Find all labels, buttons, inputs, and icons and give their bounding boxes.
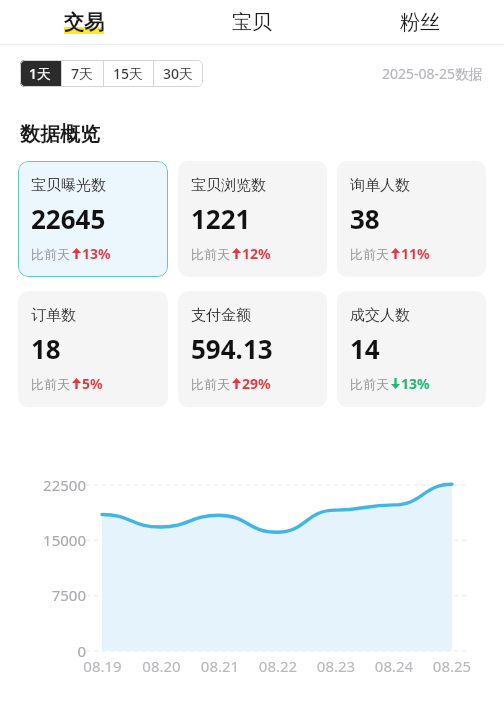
button[interactable]: 1天 [20, 60, 61, 87]
button[interactable]: 交易 [0, 0, 168, 44]
staticText: 13% [401, 374, 430, 393]
staticText: 订单数 [31, 306, 76, 325]
staticText: 询单人数 [350, 176, 410, 195]
staticText: 比前天 [350, 376, 389, 392]
button[interactable]: 订单数 [18, 291, 168, 407]
staticText: 08.25 [423, 656, 481, 673]
staticText: 08.22 [249, 656, 307, 673]
staticText: 比前天 [31, 246, 70, 262]
staticText: 宝贝曝光数 [31, 176, 106, 195]
staticText: 22500 [0, 475, 86, 495]
staticText: 12% [242, 244, 271, 263]
staticText: 0 [0, 641, 86, 661]
button[interactable]: 成交人数 [337, 291, 486, 407]
staticText: 18 [31, 331, 61, 366]
staticText: 14 [350, 331, 380, 366]
staticText: 15天 [113, 64, 144, 83]
button[interactable]: 粉丝 [336, 0, 504, 44]
staticText: 1天 [29, 64, 52, 83]
staticText: 比前天 [191, 246, 230, 262]
button[interactable]: 15天 [104, 60, 153, 87]
staticText: 数据概览 [20, 122, 100, 147]
staticText: 支付金额 [191, 306, 251, 325]
staticText: 13% [82, 244, 111, 263]
button[interactable]: 7天 [62, 60, 103, 87]
staticText: 08.19 [73, 656, 132, 673]
button[interactable]: 宝贝浏览数 [178, 161, 327, 277]
staticText: 08.23 [307, 656, 365, 673]
staticText: 宝贝浏览数 [191, 176, 266, 195]
button[interactable]: 支付金额 [178, 291, 327, 407]
button[interactable]: 30天 [154, 60, 203, 87]
staticText: 粉丝 [400, 10, 440, 35]
staticText: 比前天 [31, 376, 70, 392]
staticText: 7天 [71, 64, 94, 83]
staticText: 22645 [31, 201, 106, 236]
staticText: 成交人数 [350, 306, 410, 325]
button[interactable]: 询单人数 [337, 161, 486, 277]
staticText: 1221 [191, 201, 251, 236]
staticText: 比前天 [191, 376, 230, 392]
staticText: 5% [82, 374, 103, 393]
staticText: 2025-08-25数据 [382, 64, 484, 83]
staticText: 29% [242, 374, 271, 393]
staticText: 比前天 [350, 246, 389, 262]
staticText: 08.20 [132, 656, 191, 673]
staticText: 交易 [64, 10, 104, 35]
staticText: 08.24 [365, 656, 423, 673]
staticText: 08.21 [191, 656, 249, 673]
staticText: 594.13 [191, 331, 273, 366]
staticText: 38 [350, 201, 380, 236]
staticText: 11% [401, 244, 430, 263]
staticText: 7500 [0, 585, 86, 605]
staticText: 15000 [0, 530, 86, 550]
staticText: 宝贝 [232, 10, 272, 35]
button[interactable]: 宝贝 [168, 0, 336, 44]
staticText: 30天 [163, 64, 194, 83]
button[interactable]: 宝贝曝光数 [18, 161, 168, 277]
